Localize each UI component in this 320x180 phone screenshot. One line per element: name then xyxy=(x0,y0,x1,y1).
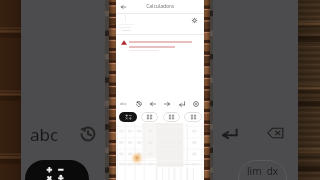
button[interactable]: Calculadora xyxy=(116,0,204,13)
button[interactable]: abc xyxy=(117,97,130,110)
button[interactable]: lim dx xyxy=(238,160,287,180)
button[interactable]: Enter xyxy=(175,97,188,110)
button[interactable]: Enter xyxy=(219,124,240,142)
button[interactable]: Keyboard xyxy=(117,97,130,110)
button[interactable]: Settings xyxy=(189,15,200,26)
button[interactable] xyxy=(25,160,89,180)
button[interactable]: Back xyxy=(117,0,130,13)
button[interactable]: History xyxy=(132,97,145,110)
button[interactable]: abc xyxy=(28,123,60,145)
button[interactable] xyxy=(184,112,202,122)
button[interactable] xyxy=(119,112,137,122)
staticText: Calculadora xyxy=(146,3,174,10)
button[interactable]: Move left xyxy=(146,97,159,110)
button[interactable]: Move right xyxy=(160,97,173,110)
button[interactable]: Clear xyxy=(189,97,202,110)
staticText: abc xyxy=(30,123,59,145)
button[interactable] xyxy=(163,112,180,122)
button[interactable] xyxy=(141,112,158,122)
button[interactable]: Backspace xyxy=(265,124,286,142)
button[interactable]: History xyxy=(78,124,98,144)
staticText: lim dx xyxy=(247,164,279,178)
staticText: abc xyxy=(120,101,127,106)
